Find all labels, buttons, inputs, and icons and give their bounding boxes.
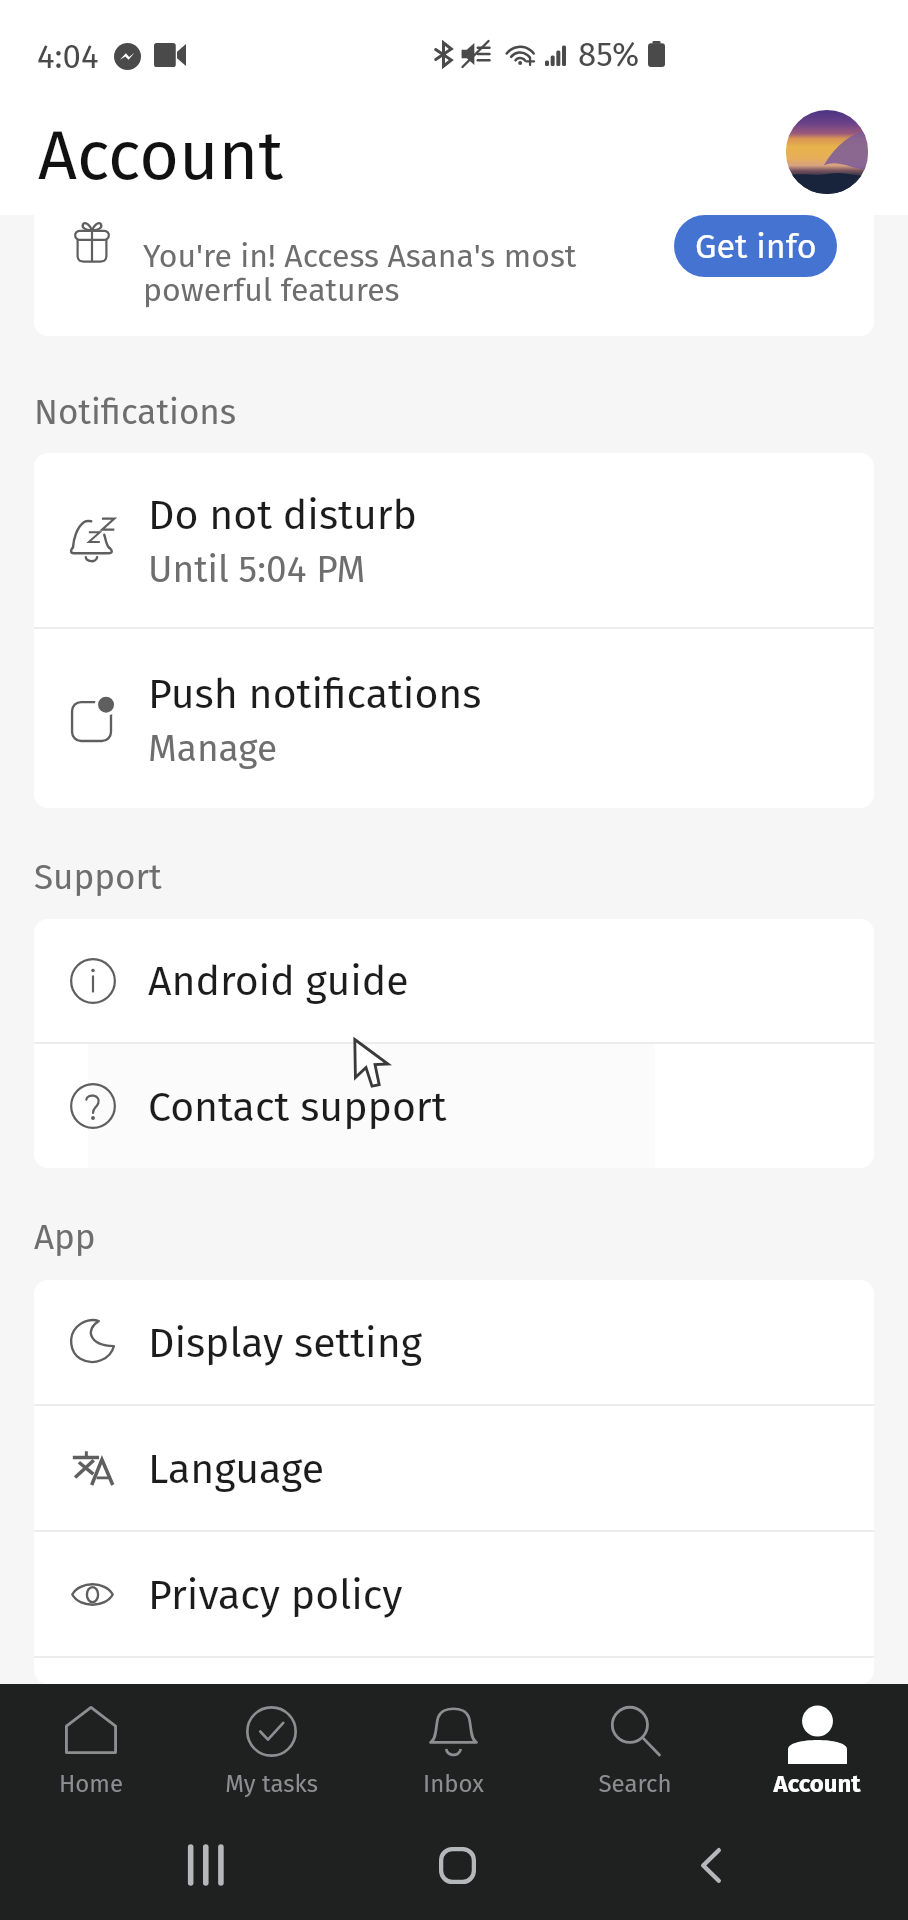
- staticText: Inbox: [423, 1770, 484, 1799]
- staticText: Account: [38, 115, 283, 197]
- button[interactable]: Inbox: [362, 1684, 544, 1810]
- button[interactable]: Push notifications: [34, 629, 874, 808]
- button[interactable]: Language: [34, 1406, 874, 1530]
- staticText: 4:04: [37, 37, 99, 77]
- staticText: Do not disturb: [148, 491, 417, 540]
- staticText: My tasks: [225, 1770, 318, 1799]
- staticText: Language: [148, 1445, 325, 1494]
- button[interactable]: My tasks: [181, 1684, 362, 1810]
- staticText: Search: [598, 1770, 672, 1799]
- button[interactable]: Home: [397, 1810, 517, 1920]
- staticText: powerful features: [143, 271, 400, 309]
- staticText: Contact support: [148, 1083, 447, 1132]
- button[interactable]: Account: [726, 1684, 908, 1810]
- button[interactable]: Display setting: [34, 1280, 874, 1404]
- staticText: Until 5:04 PM: [148, 547, 366, 591]
- button[interactable]: Android guide: [34, 919, 874, 1042]
- button[interactable]: Privacy policy: [34, 1532, 874, 1656]
- staticText: You're in! Access Asana's most: [143, 237, 577, 275]
- staticText: Display setting: [148, 1319, 423, 1368]
- staticText: Android guide: [148, 957, 409, 1006]
- button[interactable]: Recent apps: [143, 1810, 263, 1920]
- button[interactable]: Contact support: [34, 1044, 874, 1168]
- staticText: Privacy policy: [148, 1571, 403, 1620]
- button[interactable]: Home: [0, 1684, 181, 1810]
- staticText: App: [34, 1216, 96, 1256]
- staticText: Account: [773, 1770, 861, 1799]
- button[interactable]: Search: [544, 1684, 726, 1810]
- staticText: Support: [34, 856, 162, 896]
- staticText: Home: [59, 1770, 123, 1799]
- button[interactable]: Profile photo: [786, 110, 868, 194]
- staticText: Notifications: [34, 391, 237, 431]
- staticText: Push notifications: [148, 670, 482, 719]
- button[interactable]: Do not disturb: [34, 453, 874, 627]
- button[interactable]: You're in! Access Asana's most: [34, 215, 874, 336]
- button[interactable]: Back: [651, 1810, 771, 1920]
- staticText: Manage: [148, 726, 278, 770]
- staticText: Get info: [695, 226, 817, 267]
- staticText: 85%: [578, 35, 640, 75]
- button[interactable]: Get info: [674, 215, 837, 277]
